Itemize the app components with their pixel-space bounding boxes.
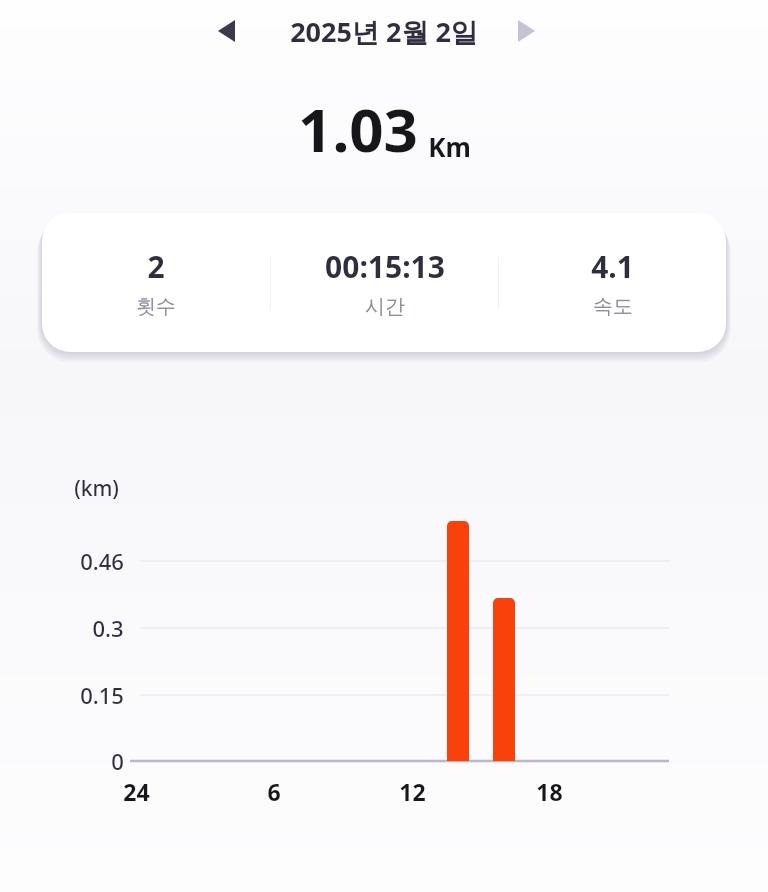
staticText: 2 xyxy=(147,246,165,287)
staticText: 속도 xyxy=(593,294,633,319)
button[interactable]: 4.1 xyxy=(499,234,726,331)
staticText: 12 xyxy=(399,776,426,807)
staticText: Km xyxy=(428,129,471,164)
staticText: 6 xyxy=(267,776,281,807)
staticText: 0.15 xyxy=(80,680,124,710)
staticText: 시간 xyxy=(365,294,405,319)
button[interactable]: Previous day xyxy=(198,3,254,59)
staticText: 2025년 2월 2일 xyxy=(290,13,478,50)
staticText: 24 xyxy=(123,776,150,807)
staticText: 0 xyxy=(111,746,124,776)
staticText: 횟수 xyxy=(136,294,176,319)
staticText: 0.46 xyxy=(80,546,124,576)
staticText: 1.03 xyxy=(298,88,418,170)
button[interactable]: 2025년 2월 2일 xyxy=(270,0,498,62)
button[interactable]: 2 xyxy=(42,234,270,331)
staticText: 4.1 xyxy=(591,246,634,287)
button[interactable]: Next day xyxy=(498,3,554,59)
button[interactable]: 00:15:13 xyxy=(271,234,498,331)
staticText: 00:15:13 xyxy=(325,246,445,287)
staticText: 0.3 xyxy=(92,613,124,643)
staticText: (km) xyxy=(74,474,119,503)
staticText: 18 xyxy=(536,776,563,807)
